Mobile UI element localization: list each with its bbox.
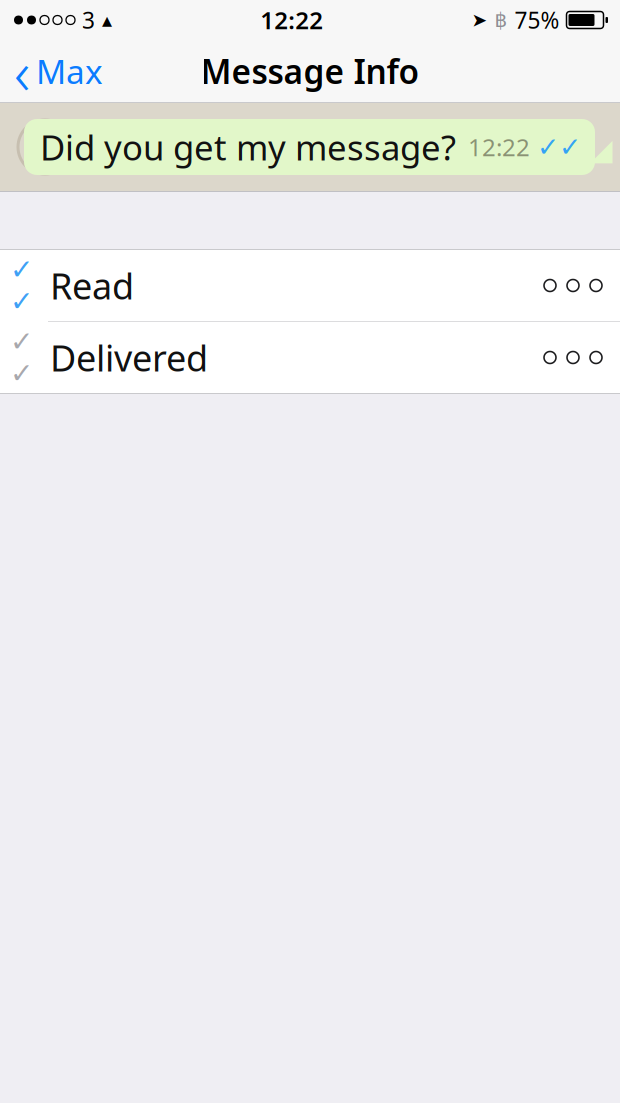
staticText: ▴	[102, 9, 112, 31]
staticText: Read	[50, 262, 134, 309]
staticText: Max	[36, 49, 103, 93]
button[interactable]: ✓✓	[0, 250, 620, 321]
staticText: ✓✓	[10, 254, 33, 317]
staticText: 12:22	[260, 4, 323, 36]
staticText: 12:22	[468, 131, 530, 163]
button[interactable]: ‹	[0, 40, 113, 102]
staticText: ◢	[590, 133, 613, 166]
staticText: Delivered	[50, 334, 208, 381]
staticText: Did you get my message?	[40, 124, 456, 170]
staticText: Message Info	[200, 49, 419, 93]
staticText: ➤	[471, 9, 487, 31]
staticText: ✓✓	[537, 132, 581, 162]
staticText: 75%	[514, 5, 559, 35]
staticText: ฿	[494, 9, 507, 31]
staticText: 3	[82, 5, 95, 35]
staticText: ‹	[14, 30, 30, 112]
button[interactable]: ✓✓	[0, 322, 620, 393]
staticText: ✓✓	[10, 326, 33, 389]
